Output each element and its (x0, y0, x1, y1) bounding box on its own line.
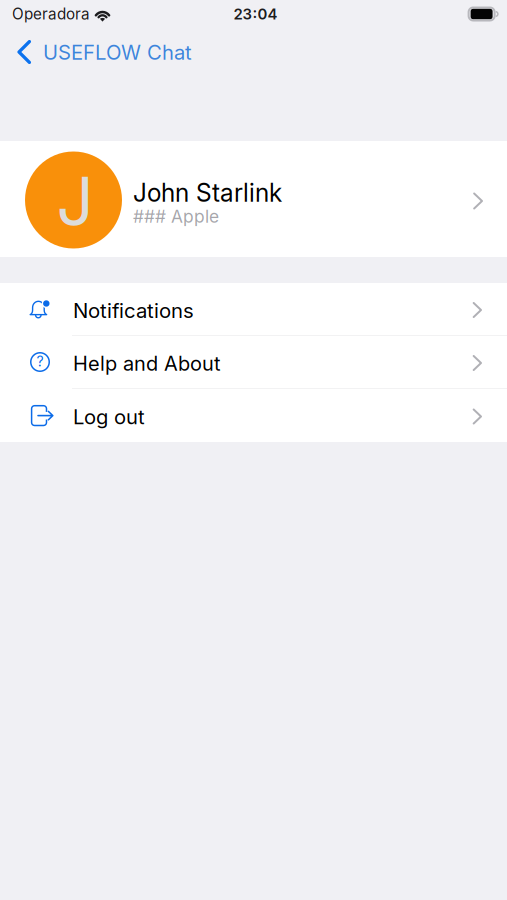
staticText: Log out (73, 405, 145, 429)
staticText: Operadora (12, 5, 90, 23)
staticText: ### Apple (133, 206, 219, 227)
staticText: Notifications (73, 298, 194, 323)
staticText: ? (36, 353, 43, 370)
button[interactable]: Log out (0, 389, 507, 442)
button[interactable]: USEFLOW Chat (0, 31, 202, 67)
staticText: Help and About (73, 351, 221, 376)
staticText: John Starlink (133, 178, 282, 208)
button[interactable]: J (0, 141, 507, 257)
button[interactable]: Notifications (0, 283, 507, 336)
staticText: USEFLOW Chat (43, 40, 192, 65)
button[interactable]: ? (0, 336, 507, 389)
staticText: 23:04 (233, 5, 277, 23)
staticText: J (56, 161, 93, 240)
